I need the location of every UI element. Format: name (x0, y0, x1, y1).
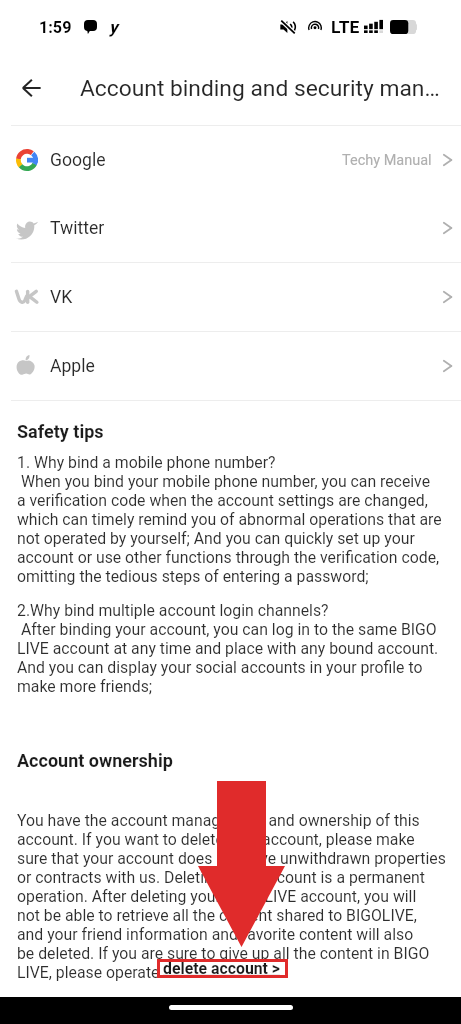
staticText: LIVE, please operate (17, 963, 160, 982)
staticText: Account ownership (17, 750, 173, 771)
staticText: y (109, 17, 118, 37)
staticText: You have the account management and owne… (17, 811, 446, 963)
button[interactable]: VK (0, 263, 461, 331)
staticText: 1. Why bind a mobile phone number? When … (17, 453, 442, 586)
staticText: Google (50, 150, 106, 171)
staticText: Account binding and security man… (80, 75, 440, 102)
staticText: LTE (331, 17, 360, 37)
staticText: Apple (50, 356, 95, 377)
staticText: Twitter (50, 218, 105, 239)
staticText: delete account > (163, 959, 281, 978)
button[interactable]: Apple (0, 332, 461, 400)
staticText: Safety tips (17, 421, 104, 442)
staticText: 1:59 (39, 18, 72, 37)
button[interactable]: Twitter (0, 194, 461, 262)
button[interactable]: Back (9, 67, 53, 111)
staticText: 2.Why bind multiple account login channe… (17, 601, 439, 696)
staticText: VK (50, 287, 73, 308)
staticText: Techy Manual (342, 152, 432, 169)
button[interactable]: delete account > (157, 959, 288, 978)
button[interactable]: Google (0, 126, 461, 194)
